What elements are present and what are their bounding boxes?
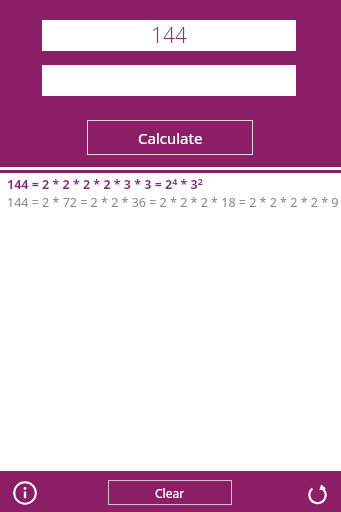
staticText: 144 = 2 * 2 * 2 * 2 * 3 * 3 = 24 * 32 — [7, 175, 203, 193]
button[interactable]: Clear — [108, 480, 232, 505]
staticText: 144 — [151, 21, 187, 50]
button[interactable]: Calculate — [87, 120, 253, 155]
button[interactable]: 144 — [42, 20, 296, 51]
button[interactable]: Reset — [303, 479, 331, 507]
staticText: 144 = 2 * 72 = 2 * 2 * 36 = 2 * 2 * 2 * … — [7, 194, 339, 211]
staticText: Calculate — [138, 128, 203, 148]
button[interactable]: Info — [11, 479, 39, 507]
staticText: Clear — [155, 485, 185, 501]
